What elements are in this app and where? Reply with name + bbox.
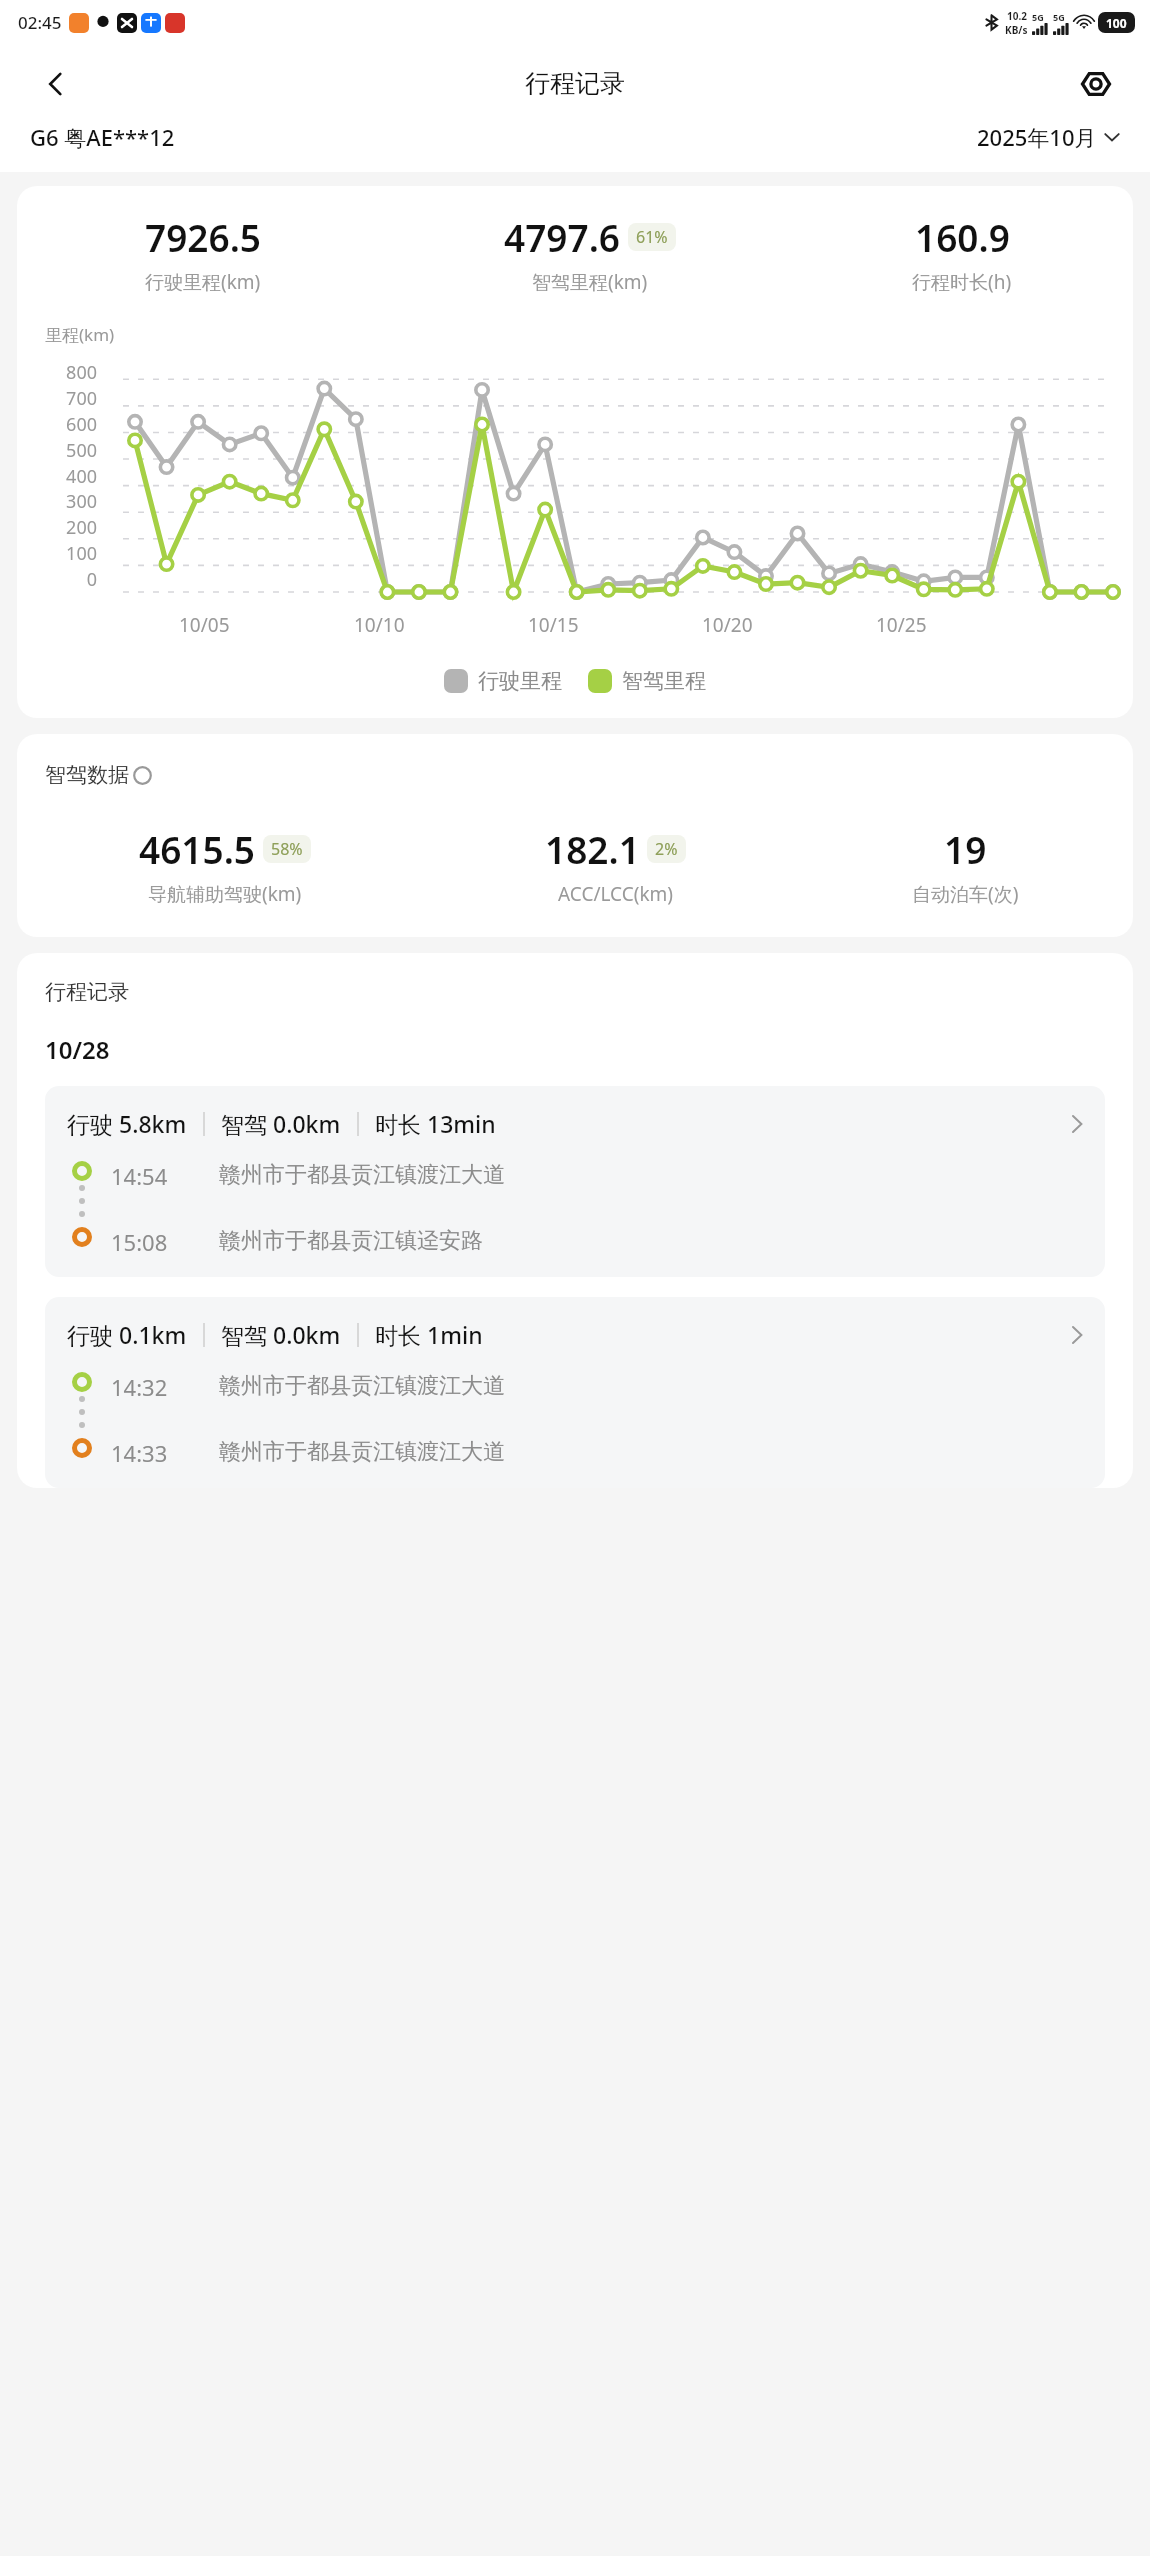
staticText: 智驾 0.0km <box>221 1108 341 1139</box>
staticText: 自动泊车(次) <box>912 881 1019 907</box>
staticText: 行驶里程(km) <box>145 269 261 295</box>
staticText: 700 <box>45 386 97 411</box>
staticText: 14:33 <box>111 1438 197 1468</box>
staticText: 2025年10月 <box>977 122 1097 152</box>
staticText: 行驶 5.8km <box>67 1108 187 1139</box>
button[interactable]: 行驶 5.8km <box>45 1086 1105 1277</box>
staticText: 10/25 <box>876 612 927 638</box>
staticText: 14:54 <box>111 1161 197 1191</box>
staticText: 时长 13min <box>375 1108 496 1139</box>
staticText: 时长 1min <box>375 1319 483 1350</box>
staticText: 10/28 <box>45 1033 110 1066</box>
staticText: 智驾数据 <box>45 762 129 788</box>
staticText: ACC/LCC(km) <box>558 881 673 907</box>
staticText: 赣州市于都县贡江镇渡江大道 <box>219 1438 505 1466</box>
staticText: 100 <box>45 541 97 566</box>
staticText: 智驾里程 <box>622 668 706 694</box>
staticText: 600 <box>45 412 97 437</box>
staticText: 里程(km) <box>45 323 115 346</box>
staticText: 行驶 0.1km <box>67 1319 187 1350</box>
staticText: 15:08 <box>111 1227 197 1257</box>
staticText: 行程记录 <box>45 979 129 1005</box>
staticText: 行程时长(h) <box>912 269 1012 295</box>
staticText: 10/15 <box>528 612 579 638</box>
staticText: 200 <box>45 515 97 540</box>
button[interactable]: Back <box>30 58 82 110</box>
staticText: 4615.5 <box>139 824 256 874</box>
button[interactable]: 智驾数据 <box>45 762 152 788</box>
staticText: 赣州市于都县贡江镇迳安路 <box>219 1227 483 1255</box>
staticText: 5G <box>1032 11 1044 23</box>
staticText: 160.9 <box>915 212 1010 262</box>
staticText: 赣州市于都县贡江镇渡江大道 <box>219 1372 505 1400</box>
staticText: 智驾里程(km) <box>532 269 648 295</box>
staticText: 02:45 <box>18 11 62 34</box>
staticText: 800 <box>45 360 97 385</box>
staticText: 行程记录 <box>525 68 625 99</box>
staticText: KB/s <box>1005 23 1028 37</box>
staticText: 300 <box>45 489 97 514</box>
staticText: 10/05 <box>179 612 230 638</box>
staticText: 400 <box>45 464 97 489</box>
staticText: 4797.6 <box>504 212 621 262</box>
staticText: 14:32 <box>111 1372 197 1402</box>
staticText: 5G <box>1053 11 1065 23</box>
staticText: 行驶里程 <box>478 668 562 694</box>
staticText: 182.1 <box>545 824 640 874</box>
staticText: 导航辅助驾驶(km) <box>148 881 302 907</box>
staticText: G6 粤AE***12 <box>30 122 175 152</box>
button[interactable]: 行驶 0.1km <box>45 1297 1105 1488</box>
staticText: 58% <box>271 838 303 860</box>
button[interactable]: Settings <box>1070 58 1122 110</box>
staticText: 7926.5 <box>145 212 262 262</box>
staticText: 赣州市于都县贡江镇渡江大道 <box>219 1161 505 1189</box>
staticText: 61% <box>636 226 668 248</box>
staticText: 19 <box>944 824 987 874</box>
button[interactable]: 2025年10月 <box>977 122 1120 152</box>
staticText: 10/10 <box>354 612 405 638</box>
staticText: 0 <box>45 567 97 592</box>
staticText: 10/20 <box>702 612 753 638</box>
staticText: 500 <box>45 438 97 463</box>
staticText: 100 <box>1106 15 1127 31</box>
staticText: 智驾 0.0km <box>221 1319 341 1350</box>
staticText: 2% <box>655 838 678 860</box>
staticText: 10.2 <box>1007 9 1027 23</box>
